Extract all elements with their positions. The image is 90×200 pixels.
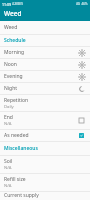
staticText: Daily: [4, 104, 14, 110]
staticText: Soil: [4, 158, 13, 165]
button[interactable]: Night: [0, 83, 90, 94]
staticText: Weed: [4, 24, 18, 31]
staticText: As needed: [4, 132, 29, 139]
button[interactable]: Noon: [0, 59, 90, 70]
staticText: Miscellaneous: [4, 145, 38, 152]
staticText: Schedule: [4, 37, 26, 44]
staticText: 4G 46%: [76, 2, 88, 6]
staticText: Noon: [4, 61, 17, 68]
staticText: 4.3KB/S: [12, 2, 23, 6]
staticText: Morning: [4, 49, 25, 56]
staticText: Weed: [4, 9, 22, 18]
button[interactable]: Unchecked: [77, 116, 86, 125]
staticText: N/A: [4, 183, 12, 189]
staticText: End: [4, 114, 13, 121]
button[interactable]: Checked: [77, 131, 86, 140]
button[interactable]: End: [0, 112, 90, 129]
button[interactable]: Weed: [0, 21, 90, 34]
staticText: 11:09: [2, 2, 11, 7]
staticText: N/A: [4, 121, 12, 127]
button[interactable]: Evening: [0, 71, 90, 82]
button[interactable]: Morning: [0, 47, 90, 58]
staticText: Current supply: [4, 192, 39, 199]
staticText: Repetition: [4, 97, 29, 104]
staticText: N/A: [4, 165, 12, 171]
button[interactable]: Refill size: [0, 174, 90, 191]
staticText: Evening: [4, 73, 23, 80]
staticText: Refill size: [4, 176, 26, 183]
button[interactable]: Current supply: [0, 192, 90, 200]
button[interactable]: Soil: [0, 156, 90, 173]
button[interactable]: Repetition: [0, 95, 90, 111]
button[interactable]: As needed: [0, 130, 90, 141]
staticText: Night: [4, 85, 18, 92]
